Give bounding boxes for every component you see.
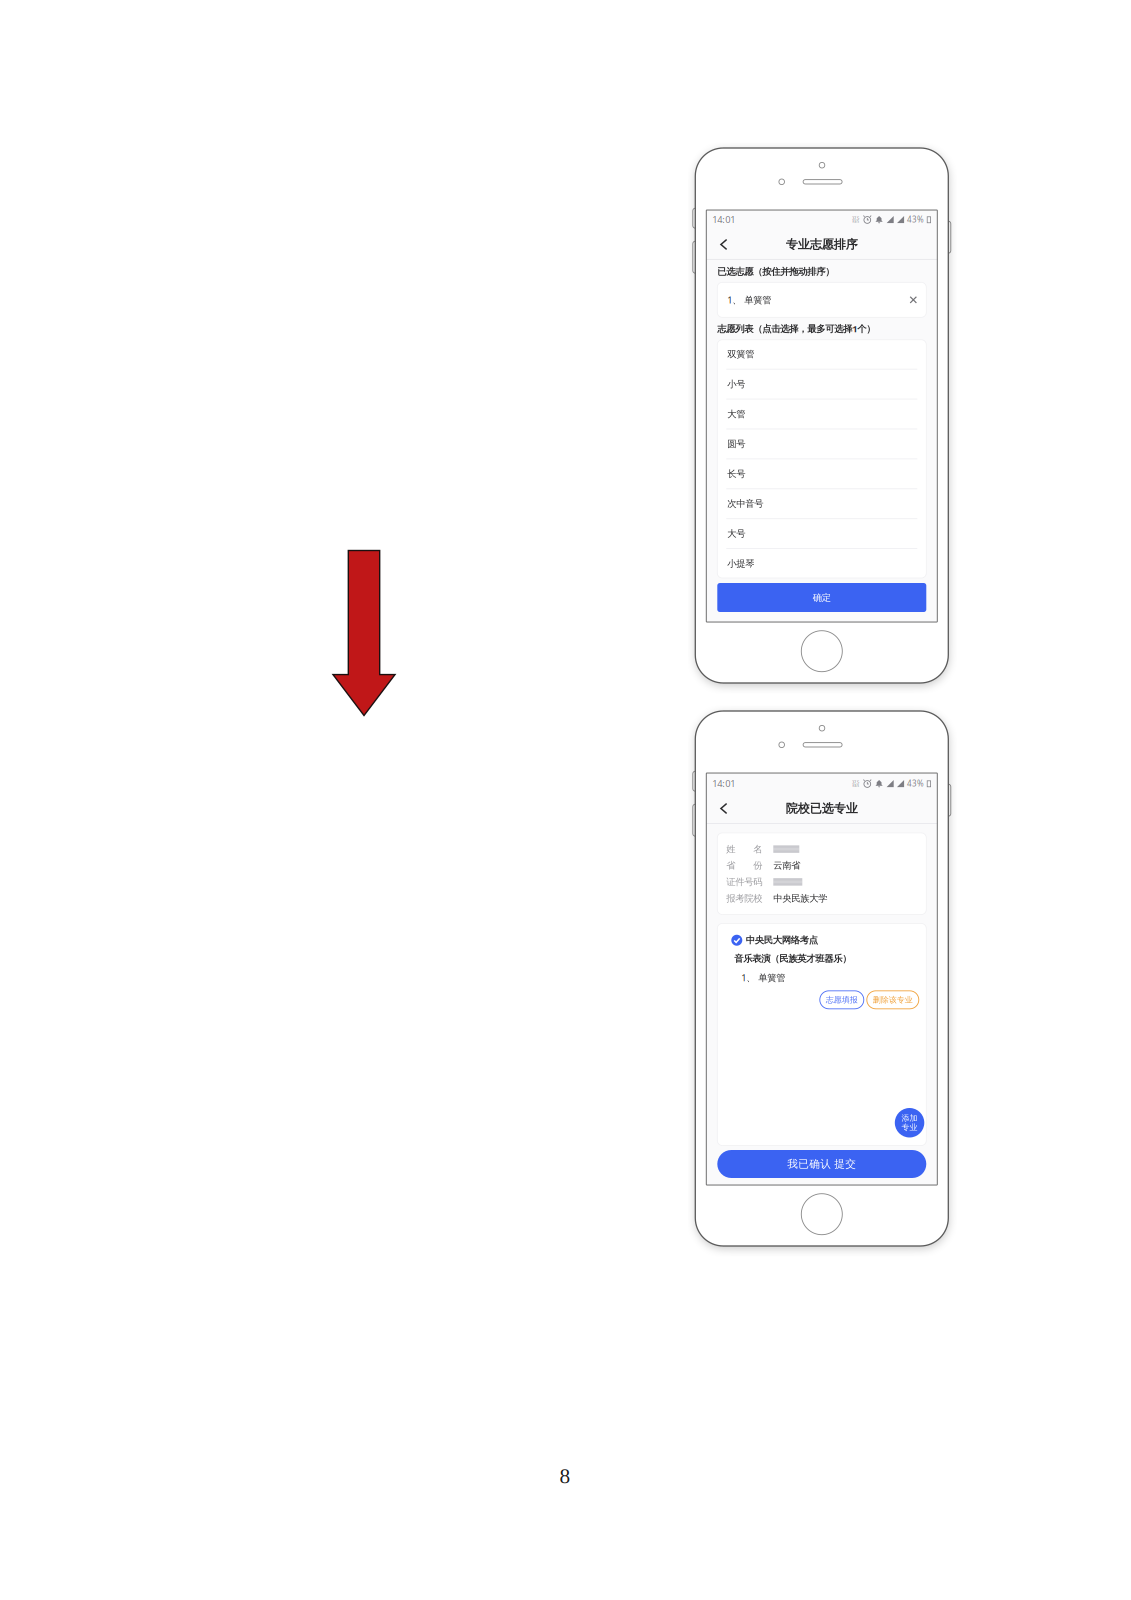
button[interactable]: 次中音号 [717, 489, 926, 518]
button[interactable]: 移除 单簧管 [903, 282, 923, 317]
staticText: 长号 [727, 468, 745, 480]
button[interactable]: 我已确认 提交 [717, 1150, 926, 1178]
staticText: 已选志愿（按住并拖动排序） [717, 266, 834, 277]
staticText: 1、 单簧管 [741, 971, 785, 984]
staticText: 报考院校 [726, 893, 762, 904]
staticText: 志愿填报 [826, 995, 858, 1005]
staticText: 圆号 [727, 438, 745, 450]
button[interactable]: 1、 单簧管 [717, 282, 903, 317]
staticText: 我已确认 提交 [787, 1157, 856, 1170]
staticText: 大号 [727, 528, 745, 539]
staticText: 省 份 [726, 860, 762, 871]
button[interactable]: 大管 [717, 399, 926, 428]
button[interactable]: 志愿填报 [820, 991, 864, 1009]
button[interactable]: 小提琴 [717, 549, 926, 578]
staticText: 确定 [813, 592, 831, 603]
staticText: 37.5 [852, 215, 859, 221]
button[interactable]: 大号 [717, 519, 926, 548]
button[interactable]: 删除该专业 [867, 991, 919, 1009]
staticText: 志愿列表（点击选择，最多可选择1个） [717, 322, 875, 335]
staticText: 添加 [901, 1113, 917, 1123]
staticText: 双簧管 [727, 348, 754, 360]
button[interactable]: 双簧管 [717, 340, 926, 369]
staticText: 14:01 [712, 777, 735, 790]
staticText: 8 [559, 1464, 570, 1488]
button[interactable]: 添加 [895, 1108, 924, 1137]
staticText: 姓 名 [726, 843, 762, 855]
staticText: 中央民族大学 [773, 893, 827, 904]
staticText: 中央民大网络考点 [746, 934, 818, 946]
staticText: 次中音号 [727, 498, 763, 509]
staticText: 音乐表演（民族英才班器乐） [734, 953, 851, 964]
staticText: 37.5 [852, 779, 859, 785]
button[interactable]: 长号 [717, 459, 926, 488]
staticText: 小提琴 [727, 558, 754, 569]
staticText: 院校已选专业 [786, 801, 858, 816]
staticText: 14:01 [712, 213, 735, 226]
button[interactable]: 小号 [717, 370, 926, 399]
staticText: 云南省 [773, 860, 800, 871]
staticText: 43% [907, 214, 924, 225]
button[interactable]: 确定 [717, 583, 926, 612]
staticText: 1、 单簧管 [727, 294, 771, 306]
staticText: 43% [907, 778, 924, 789]
staticText: KB/S [853, 784, 859, 788]
staticText: 删除该专业 [873, 995, 913, 1005]
staticText: 小号 [727, 378, 745, 390]
staticText: KB/S [853, 220, 859, 224]
staticText: 专业 [901, 1122, 917, 1132]
button[interactable]: 圆号 [717, 429, 926, 458]
staticText: 大管 [727, 408, 745, 420]
staticText: 证件号码 [726, 876, 762, 888]
button[interactable]: 返回 [712, 230, 736, 258]
button[interactable]: 返回 [712, 794, 736, 822]
staticText: 专业志愿排序 [786, 237, 858, 252]
